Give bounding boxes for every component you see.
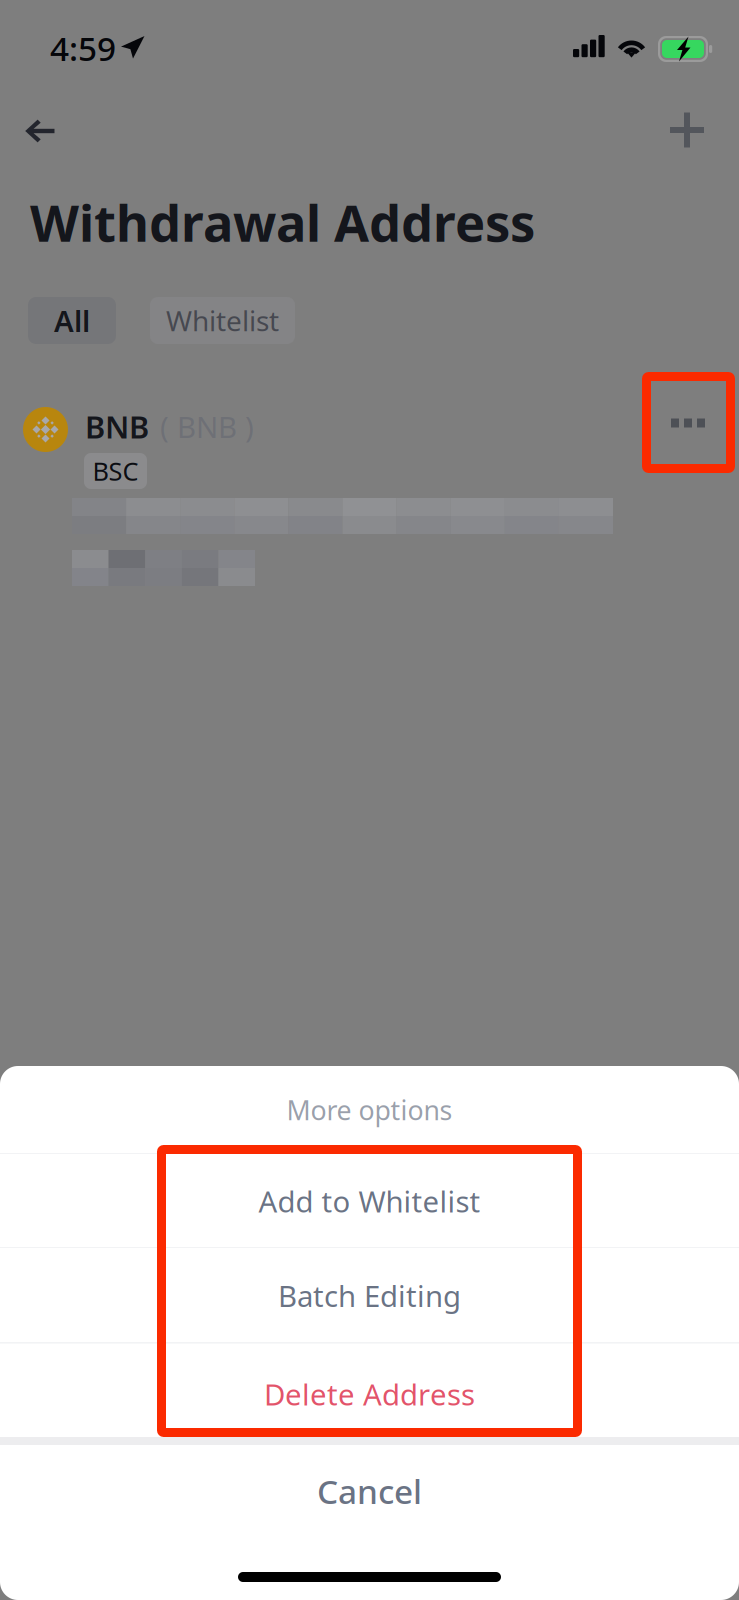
staticText: All (54, 301, 90, 340)
staticText: ( BNB ) (160, 407, 254, 446)
button[interactable]: Whitelist (150, 297, 295, 344)
staticText: BSC (92, 454, 138, 488)
button[interactable]: Cancel (0, 1445, 739, 1537)
staticText: 4:59 (50, 26, 116, 70)
button[interactable]: Delete Address (0, 1349, 739, 1439)
staticText: More options (286, 1092, 452, 1128)
button[interactable]: All (28, 297, 116, 344)
button[interactable]: Add to Whitelist (0, 1154, 739, 1248)
staticText: BNB (85, 406, 149, 447)
staticText: Delete Address (264, 1374, 475, 1413)
staticText: Whitelist (166, 302, 279, 339)
button[interactable]: Add address (655, 104, 719, 156)
button[interactable]: Back (8, 105, 72, 157)
staticText: Withdrawal Address (30, 188, 535, 256)
button[interactable]: More options (648, 390, 728, 456)
staticText: Batch Editing (278, 1276, 461, 1315)
button[interactable]: Batch Editing (0, 1248, 739, 1343)
staticText: Cancel (317, 1469, 422, 1513)
staticText: Add to Whitelist (258, 1181, 480, 1220)
